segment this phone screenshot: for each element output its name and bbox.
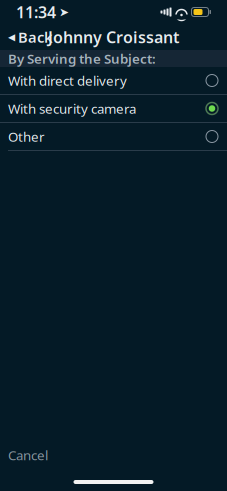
staticText: Other [8,128,45,145]
staticText: ◀ [8,32,15,42]
staticText: ➤ [59,5,69,19]
button[interactable]: With security camera [0,95,227,122]
staticText: Johnny Croissant [48,26,179,48]
button[interactable]: ◀ [2,22,59,52]
staticText: Cancel [8,446,48,464]
button[interactable]: Cancel [0,440,56,470]
staticText: Back [18,27,53,47]
staticText: 11:34 [16,1,56,23]
button[interactable]: With direct delivery [0,67,227,94]
button[interactable]: Other [0,123,227,150]
staticText: With security camera [8,100,136,117]
staticText: By Serving the Subject: [8,50,156,67]
staticText: With direct delivery [8,72,127,89]
